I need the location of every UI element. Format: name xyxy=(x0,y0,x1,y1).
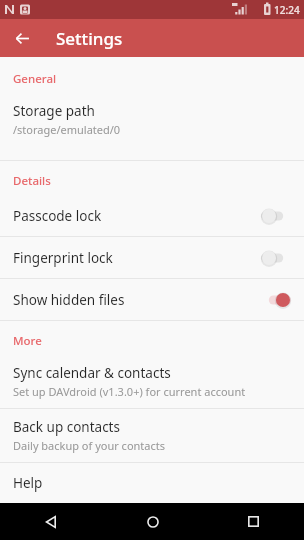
button[interactable]: Fingerprint lock xyxy=(0,237,304,278)
staticText: Set up DAVdroid (v1.3.0+) for current ac… xyxy=(13,384,246,399)
staticText: Sync calendar & contacts xyxy=(13,364,171,382)
staticText: Daily backup of your contacts xyxy=(13,438,166,453)
staticText: Passcode lock xyxy=(13,207,261,225)
button[interactable]: Help xyxy=(0,463,304,503)
staticText: General xyxy=(13,71,57,87)
button[interactable]: Back xyxy=(0,503,102,540)
staticText: Details xyxy=(13,173,51,189)
staticText: 12:24 xyxy=(274,3,300,17)
button[interactable]: Back up contacts xyxy=(0,409,304,462)
staticText: /storage/emulated/0 xyxy=(13,122,121,137)
staticText: Fingerprint lock xyxy=(13,249,261,267)
staticText: Back up contacts xyxy=(13,418,120,436)
staticText: Storage path xyxy=(13,102,95,120)
button[interactable]: Storage path xyxy=(0,93,304,146)
button[interactable]: Back xyxy=(6,22,38,54)
staticText: Settings xyxy=(56,27,123,50)
button[interactable]: Passcode lock xyxy=(0,195,304,236)
staticText: Show hidden files xyxy=(13,291,261,309)
button[interactable]: Show hidden files xyxy=(0,279,304,320)
button[interactable]: Recents xyxy=(203,503,304,540)
staticText: Help xyxy=(13,474,43,492)
button[interactable]: Home xyxy=(102,503,203,540)
button[interactable]: Sync calendar & contacts xyxy=(0,355,304,408)
staticText: More xyxy=(13,333,42,349)
